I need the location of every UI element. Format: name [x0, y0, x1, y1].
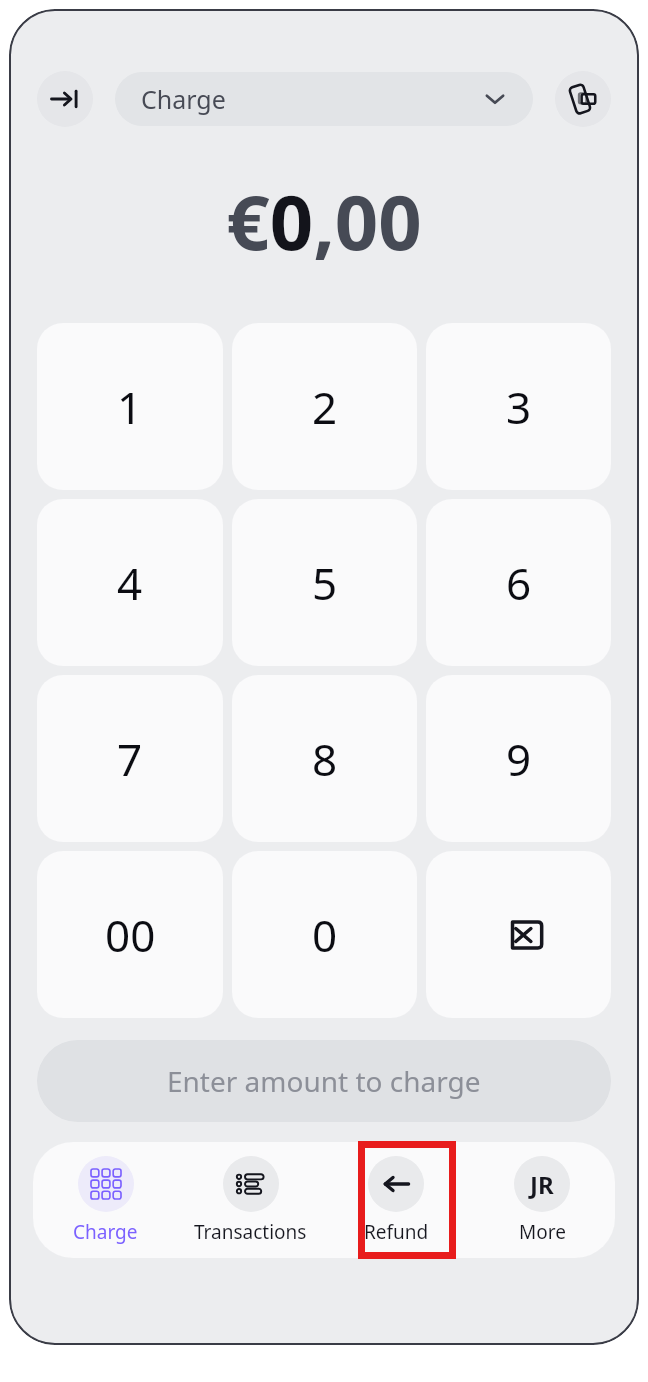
staticText: 7 [117, 729, 143, 789]
staticText: 9 [506, 729, 532, 789]
staticText: 6 [506, 553, 532, 613]
button[interactable]: Charge [33, 1150, 178, 1251]
staticText: Charge [141, 82, 226, 116]
button[interactable]: 9 [426, 675, 611, 842]
staticText: JR [530, 1168, 554, 1201]
button[interactable]: 8 [232, 675, 417, 842]
staticText: 3 [506, 377, 532, 437]
button[interactable]: Transactions [178, 1150, 323, 1251]
button[interactable]: JR [469, 1150, 615, 1251]
staticText: Charge [73, 1219, 138, 1245]
staticText: 5 [312, 553, 338, 613]
button[interactable]: Enter amount to charge [37, 1040, 611, 1122]
button[interactable]: 00 [37, 851, 223, 1018]
staticText: 00 [105, 905, 156, 965]
staticText: Enter amount to charge [167, 1062, 481, 1100]
button[interactable]: 6 [426, 499, 611, 666]
button[interactable]: Tap to pay [555, 71, 611, 127]
staticText: 1 [117, 377, 143, 437]
staticText: Transactions [194, 1219, 307, 1245]
button[interactable]: 7 [37, 675, 223, 842]
button[interactable]: 2 [232, 323, 417, 490]
staticText: 2 [312, 377, 338, 437]
button[interactable]: Backspace [426, 851, 611, 1018]
button[interactable]: Exit [37, 71, 93, 127]
button[interactable]: Charge [115, 72, 533, 126]
staticText: 4 [117, 553, 143, 613]
button[interactable]: Refund [323, 1150, 469, 1251]
button[interactable]: 4 [37, 499, 223, 666]
button[interactable]: 3 [426, 323, 611, 490]
staticText: 8 [312, 729, 338, 789]
button[interactable]: 1 [37, 323, 223, 490]
staticText: More [519, 1219, 566, 1245]
button[interactable]: 0 [232, 851, 417, 1018]
staticText: 0 [312, 905, 338, 965]
staticText: Refund [364, 1219, 429, 1245]
staticText: €0,00 [226, 169, 422, 273]
button[interactable]: 5 [232, 499, 417, 666]
